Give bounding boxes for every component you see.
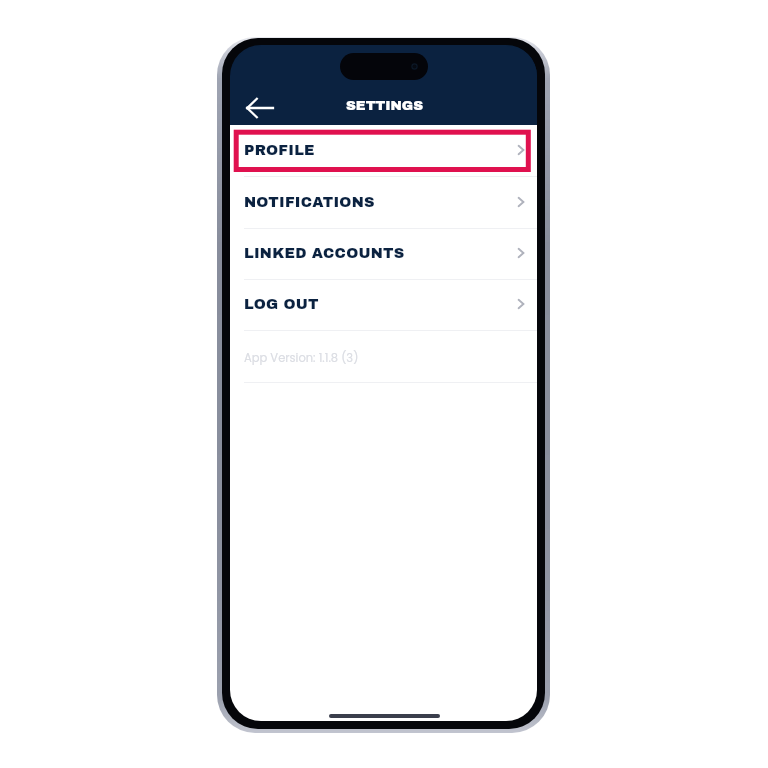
staticText: App Version: 1.1.8 (3) [244, 350, 359, 366]
staticText: NOTIFICATIONS [244, 194, 375, 210]
button[interactable]: LINKED ACCOUNTS [231, 229, 537, 279]
button[interactable]: PROFILE [231, 125, 537, 176]
staticText: LOG OUT [244, 296, 319, 312]
staticText: LINKED ACCOUNTS [244, 245, 405, 261]
button[interactable]: Back [245, 92, 277, 122]
button[interactable]: LOG OUT [231, 280, 537, 330]
staticText: SETTINGS [346, 98, 424, 113]
button[interactable]: NOTIFICATIONS [231, 177, 537, 228]
staticText: PROFILE [244, 142, 315, 158]
